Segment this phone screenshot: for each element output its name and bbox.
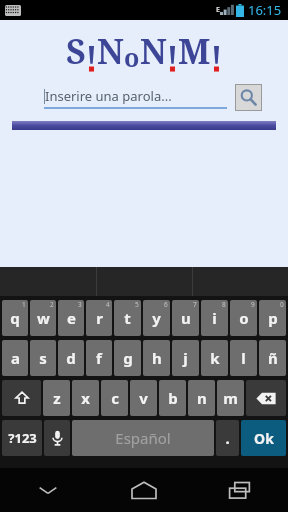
button[interactable]: 7 (172, 300, 199, 336)
staticText: o (239, 308, 249, 328)
button[interactable]: 5 (114, 300, 141, 336)
staticText: 7 (193, 300, 197, 309)
button[interactable]: z (43, 380, 70, 416)
staticText: d (66, 348, 76, 368)
button[interactable]: f (86, 340, 112, 376)
staticText: t (124, 308, 131, 328)
staticText: j (183, 348, 188, 368)
staticText: Español (115, 428, 171, 448)
button[interactable]: Recent apps (192, 468, 288, 512)
button[interactable]: 6 (143, 300, 170, 336)
button[interactable]: s (30, 340, 56, 376)
staticText: y (152, 308, 161, 328)
button[interactable]: v (130, 380, 157, 416)
staticText: s (39, 348, 47, 368)
button[interactable]: h (143, 340, 170, 376)
button[interactable]: Ok (241, 420, 286, 456)
staticText: 9 (251, 300, 255, 309)
staticText: u (181, 308, 191, 328)
button[interactable]: g (114, 340, 141, 376)
button[interactable]: . (216, 420, 239, 456)
button[interactable]: ñ (259, 340, 286, 376)
button[interactable]: 8 (201, 300, 228, 336)
button[interactable]: Search (235, 84, 262, 111)
staticText: 2 (50, 300, 54, 309)
staticText: w (37, 308, 50, 328)
button[interactable]: 4 (86, 300, 112, 336)
staticText: S (66, 28, 86, 74)
button[interactable]: m (217, 380, 244, 416)
staticText: 1 (22, 300, 26, 309)
staticText: b (168, 388, 178, 408)
button[interactable]: j (172, 340, 199, 376)
button[interactable]: x (72, 380, 99, 416)
staticText: p (268, 308, 278, 328)
button[interactable]: Shift (2, 380, 41, 416)
staticText: x (81, 388, 90, 408)
button[interactable]: l (230, 340, 257, 376)
button[interactable]: Home (96, 468, 192, 512)
button[interactable]: Voice input (44, 420, 70, 456)
staticText: q (10, 308, 20, 328)
button[interactable]: Español (72, 420, 214, 456)
staticText: n (197, 388, 207, 408)
staticText: a (11, 348, 20, 368)
staticText: N (140, 28, 167, 74)
staticText: k (210, 348, 220, 368)
button[interactable]: d (58, 340, 84, 376)
button[interactable]: Inserire una parola... (44, 87, 227, 109)
staticText: . (225, 428, 230, 448)
staticText: N (97, 28, 124, 74)
button[interactable]: 3 (58, 300, 84, 336)
staticText: E (216, 5, 220, 15)
button[interactable]: k (201, 340, 228, 376)
staticText: f (96, 348, 102, 368)
staticText: i (212, 308, 217, 328)
button[interactable]: ?123 (2, 420, 42, 456)
staticText: 4 (106, 300, 110, 309)
staticText: 3 (78, 300, 82, 309)
button[interactable]: a (2, 340, 28, 376)
staticText: e (67, 308, 76, 328)
staticText: M (178, 28, 211, 74)
staticText: o (124, 40, 140, 74)
button[interactable]: n (188, 380, 215, 416)
staticText: r (96, 308, 103, 328)
button[interactable]: Backspace (246, 380, 286, 416)
button[interactable]: b (159, 380, 186, 416)
staticText: ?123 (8, 429, 37, 447)
button[interactable]: c (101, 380, 128, 416)
staticText: v (139, 388, 148, 408)
staticText: 6 (164, 300, 168, 309)
staticText: 5 (135, 300, 139, 309)
staticText: 8 (222, 300, 226, 309)
staticText: g (123, 348, 133, 368)
button[interactable]: 0 (259, 300, 286, 336)
button[interactable]: 2 (30, 300, 56, 336)
staticText: h (152, 348, 162, 368)
staticText: l (241, 348, 246, 368)
button[interactable]: 1 (2, 300, 28, 336)
staticText: Inserire una parola... (45, 87, 172, 105)
staticText: 0 (280, 300, 284, 309)
button[interactable]: 9 (230, 300, 257, 336)
staticText: 16:15 (248, 1, 282, 19)
staticText: c (111, 388, 119, 408)
staticText: z (53, 388, 61, 408)
staticText: m (223, 388, 238, 408)
staticText: Ok (254, 429, 274, 448)
button[interactable]: Hide keyboard (0, 468, 96, 512)
staticText: ñ (268, 348, 278, 368)
